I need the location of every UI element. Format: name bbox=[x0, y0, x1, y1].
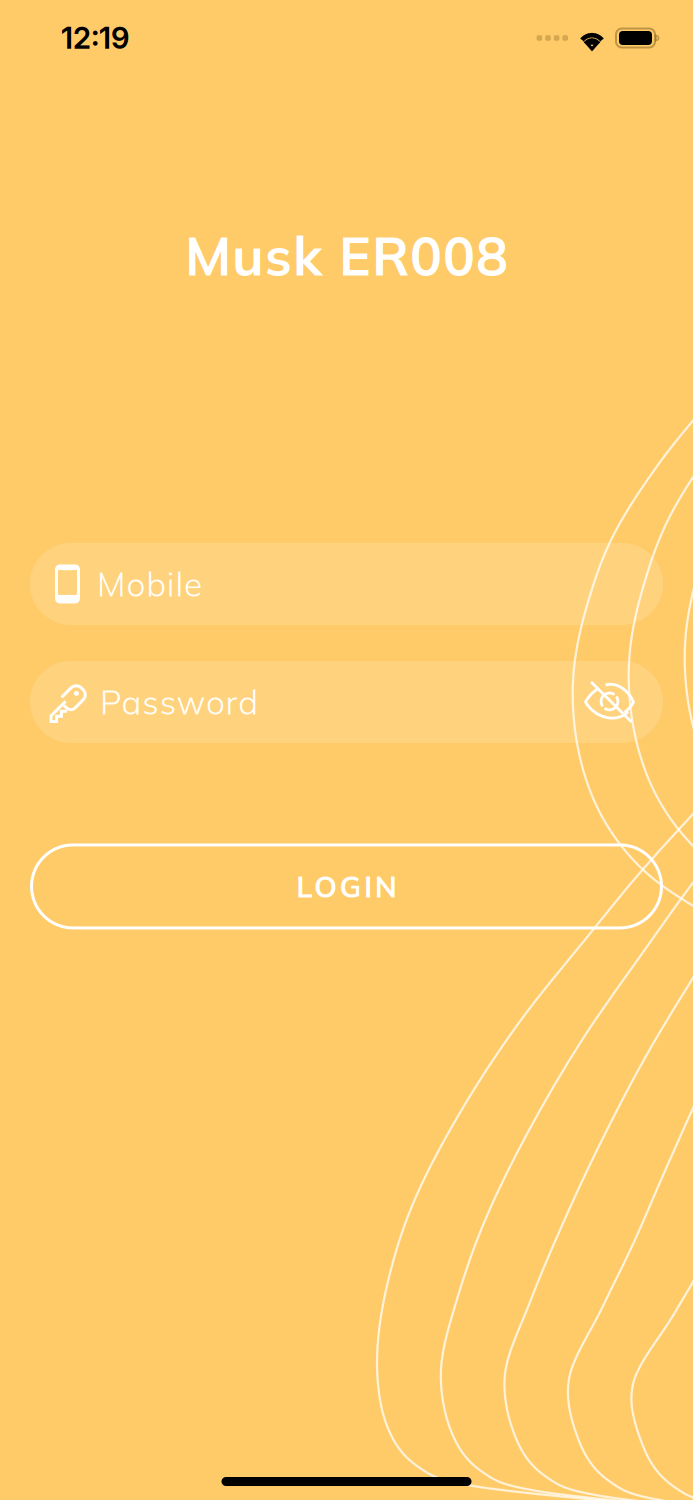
staticText: Musk ER008 bbox=[185, 222, 508, 289]
button[interactable]: Show password bbox=[584, 670, 663, 733]
staticText: Mobile bbox=[97, 563, 202, 605]
staticText: LOGIN bbox=[296, 868, 397, 905]
staticText: Password bbox=[100, 681, 258, 723]
staticText: 12:19 bbox=[61, 20, 129, 56]
button[interactable]: LOGIN bbox=[31, 845, 661, 928]
